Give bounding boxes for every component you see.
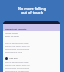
staticText: No more falling out of touch bbox=[0, 6, 64, 16]
staticText: Sed ut perspiciatis unde omnis iste natu… bbox=[5, 42, 35, 54]
staticText: Sed ut perspiciatis unde omnis iste natu… bbox=[5, 61, 35, 72]
staticText: Lorem ipsum dolor sit amet bbox=[5, 32, 23, 38]
staticText: Important update bbox=[5, 27, 27, 30]
staticText: Alex Doe bbox=[9, 57, 18, 60]
